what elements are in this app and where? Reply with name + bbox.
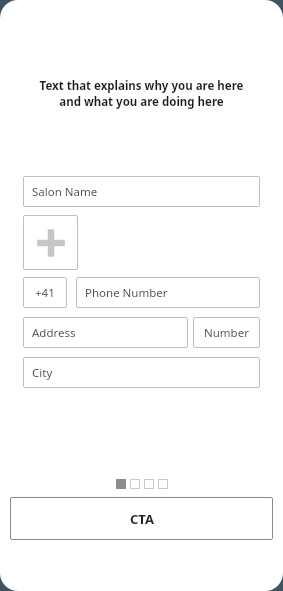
- button[interactable]: Address: [23, 317, 188, 348]
- staticText: Text that explains why you are here and …: [22, 78, 261, 109]
- button[interactable]: +41: [23, 277, 67, 308]
- button[interactable]: [158, 479, 168, 489]
- button[interactable]: Add photo: [23, 215, 78, 270]
- button[interactable]: [130, 479, 140, 489]
- button[interactable]: Salon Name: [23, 176, 260, 207]
- staticText: Salon Name: [32, 184, 98, 200]
- staticText: Address: [32, 325, 76, 341]
- staticText: CTA: [130, 510, 154, 528]
- button[interactable]: City: [23, 357, 260, 388]
- staticText: +41: [35, 285, 55, 301]
- button[interactable]: Phone Number: [76, 277, 260, 308]
- staticText: City: [32, 365, 53, 381]
- button[interactable]: Number: [193, 317, 260, 348]
- button[interactable]: [144, 479, 154, 489]
- button[interactable]: CTA: [10, 497, 273, 540]
- staticText: Phone Number: [85, 285, 168, 301]
- staticText: Number: [204, 325, 249, 341]
